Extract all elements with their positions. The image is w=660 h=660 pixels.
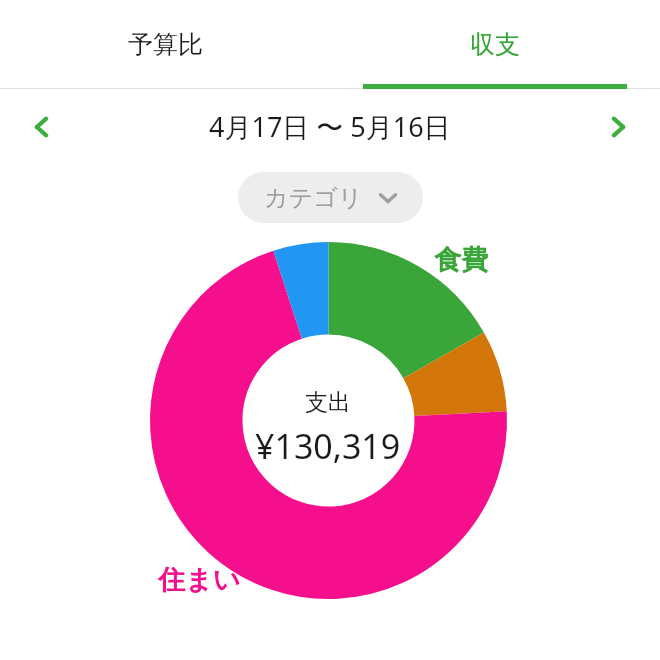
staticText: カテゴリ <box>264 183 363 213</box>
staticText: 収支 <box>470 29 520 60</box>
staticText: 4月17日 〜 5月16日 <box>209 108 451 145</box>
staticText: 支出 <box>305 388 351 417</box>
button[interactable]: 収支 <box>330 0 660 88</box>
button[interactable]: 予算比 <box>0 0 330 88</box>
staticText: 食費 <box>434 243 488 277</box>
button[interactable]: Previous period <box>14 99 70 155</box>
button[interactable]: カテゴリ <box>238 172 423 223</box>
staticText: 住まい <box>158 563 241 597</box>
button[interactable]: Next period <box>590 99 646 155</box>
staticText: 予算比 <box>128 29 203 60</box>
staticText: ¥130,319 <box>255 423 401 469</box>
